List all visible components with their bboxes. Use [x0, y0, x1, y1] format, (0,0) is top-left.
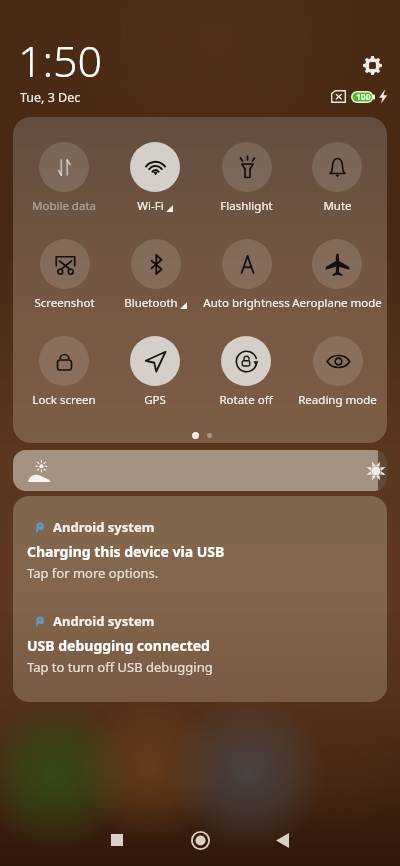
button[interactable]: Flashlight — [201, 142, 291, 220]
staticText: Aeroplane mode — [292, 295, 382, 311]
button[interactable]: Auto brightness — [201, 239, 291, 317]
staticText: Tap to turn off USB debugging — [27, 658, 213, 676]
staticText: 1:50 — [18, 31, 103, 90]
button[interactable]: Bluetooth — [110, 239, 200, 317]
staticText: Lock screen — [32, 392, 96, 408]
button[interactable]: Mute — [292, 142, 382, 220]
staticText: Mobile data — [32, 198, 96, 214]
button[interactable]: Back — [240, 816, 324, 864]
button[interactable]: Lock screen — [19, 336, 109, 414]
staticText: Tue, 3 Dec — [20, 89, 81, 106]
button[interactable]: Mobile data — [19, 142, 109, 220]
staticText: Tap for more options. — [27, 564, 159, 582]
button[interactable]: Android system — [13, 496, 387, 590]
staticText: Android system — [53, 612, 155, 630]
staticText: 100 — [356, 91, 371, 103]
button[interactable]: Brightness — [13, 450, 387, 491]
staticText: USB debugging connected — [27, 636, 210, 655]
button[interactable]: Wi-Fi — [110, 142, 200, 220]
staticText: Screenshot — [34, 295, 95, 311]
button[interactable]: Reading mode — [292, 336, 382, 414]
staticText: Bluetooth — [124, 295, 178, 311]
button[interactable]: Recents — [75, 816, 159, 864]
staticText: Flashlight — [220, 198, 273, 214]
staticText: Mute — [323, 198, 352, 214]
button[interactable]: Aeroplane mode — [292, 239, 382, 317]
staticText: Rotate off — [219, 392, 273, 408]
staticText: Wi-Fi — [137, 198, 164, 214]
staticText: Android system — [53, 518, 155, 536]
button[interactable]: Android system — [13, 590, 387, 684]
staticText: Reading mode — [298, 392, 377, 408]
button[interactable]: Settings — [359, 52, 385, 78]
button[interactable]: Screenshot — [19, 239, 109, 317]
staticText: GPS — [144, 392, 166, 408]
button[interactable]: GPS — [110, 336, 200, 414]
button[interactable]: Home — [158, 816, 242, 864]
button[interactable]: Rotate off — [201, 336, 291, 414]
staticText: Charging this device via USB — [27, 542, 225, 561]
staticText: Auto brightness — [203, 295, 290, 311]
